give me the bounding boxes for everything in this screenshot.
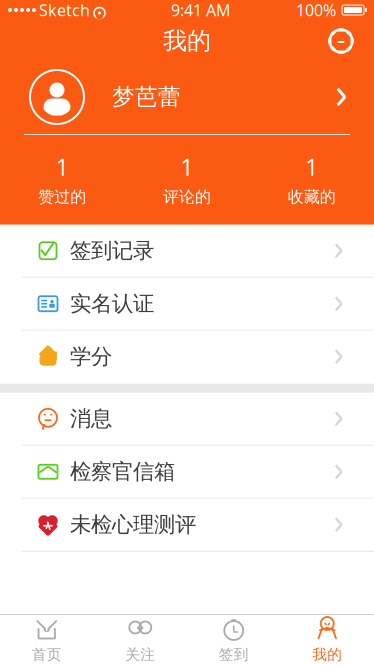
staticText: 学分 xyxy=(70,344,112,370)
staticText: 评论的 xyxy=(163,187,211,207)
button[interactable]: 签到记录 xyxy=(0,225,374,278)
button[interactable]: 消息 xyxy=(0,393,374,446)
button[interactable]: 学分 xyxy=(0,331,374,384)
button[interactable]: 实名认证 xyxy=(0,278,374,331)
staticText: 100% xyxy=(296,0,336,21)
staticText: 首页 xyxy=(32,645,62,663)
staticText: 关注 xyxy=(125,645,155,663)
staticText: 实名认证 xyxy=(70,291,154,317)
staticText: 梦芭蕾 xyxy=(112,83,181,111)
staticText: Sketch xyxy=(39,0,90,21)
staticText: 签到 xyxy=(219,645,249,663)
staticText: 1 xyxy=(180,152,193,182)
button[interactable]: 我的 xyxy=(280,610,374,665)
button[interactable]: 未检心理测评 xyxy=(0,499,374,552)
staticText: 我的 xyxy=(163,26,211,56)
button[interactable]: 1 xyxy=(0,146,125,213)
staticText: 检察官信箱 xyxy=(70,459,175,485)
staticText: 我的 xyxy=(312,645,342,663)
button[interactable]: 关注 xyxy=(93,610,187,665)
staticText: 1 xyxy=(56,152,69,182)
button[interactable]: 1 xyxy=(125,146,249,213)
staticText: 签到记录 xyxy=(70,238,154,264)
staticText: 1 xyxy=(305,152,318,182)
button[interactable]: 签到 xyxy=(187,610,280,665)
button[interactable]: 1 xyxy=(249,146,374,213)
staticText: 收藏的 xyxy=(288,187,336,207)
staticText: 赞过的 xyxy=(38,187,86,207)
staticText: 未检心理测评 xyxy=(70,512,196,538)
button[interactable]: Settings xyxy=(316,20,366,62)
staticText: 9:41 AM xyxy=(171,0,231,21)
button[interactable]: 梦芭蕾 xyxy=(0,62,374,132)
button[interactable]: 首页 xyxy=(0,610,93,665)
button[interactable]: 检察官信箱 xyxy=(0,446,374,499)
staticText: 消息 xyxy=(70,406,112,432)
